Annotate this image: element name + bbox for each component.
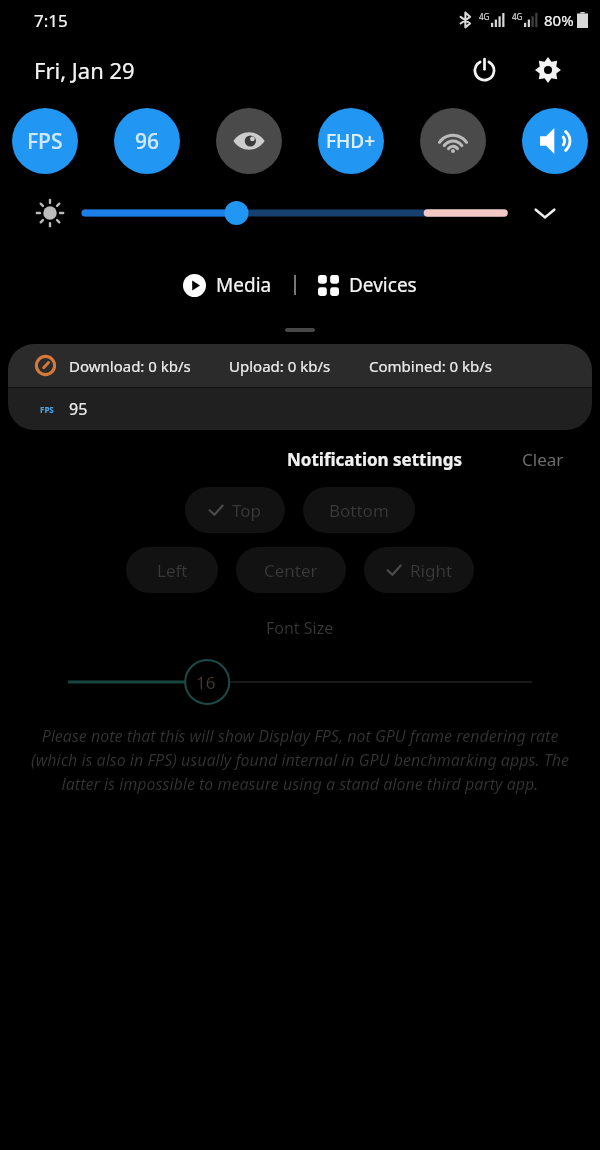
- staticText: Bottom: [329, 499, 389, 522]
- staticText: 16: [196, 671, 216, 694]
- button[interactable]: Right: [364, 547, 474, 593]
- button[interactable]: Brightness: [85, 198, 500, 228]
- staticText: 4G: [512, 11, 523, 22]
- button[interactable]: Resolution FHD+: [318, 108, 384, 174]
- button[interactable]: FPS: [8, 388, 592, 430]
- staticText: FPS: [27, 127, 63, 156]
- staticText: Combined: 0 kb/s: [369, 356, 493, 376]
- staticText: Upload: 0 kb/s: [229, 356, 331, 376]
- button[interactable]: Notification settings: [279, 440, 470, 479]
- button[interactable]: Top: [185, 487, 285, 533]
- staticText: Notification settings: [287, 448, 462, 471]
- staticText: FHD+: [326, 128, 376, 154]
- staticText: Clear: [522, 448, 564, 471]
- button[interactable]: Power off: [462, 48, 506, 92]
- staticText: 80%: [544, 10, 574, 30]
- staticText: 96: [135, 127, 160, 156]
- button[interactable]: Blue light filter: [216, 108, 282, 174]
- staticText: Right: [410, 559, 453, 582]
- staticText: 95: [69, 398, 88, 420]
- button[interactable]: Wi-Fi: [420, 108, 486, 174]
- button[interactable]: Devices: [312, 266, 423, 304]
- staticText: Font Size: [266, 617, 334, 639]
- staticText: Please note that this will show Display …: [22, 725, 578, 795]
- button[interactable]: FPS counter: [12, 108, 78, 174]
- staticText: Media: [216, 272, 272, 298]
- button[interactable]: Clear: [514, 440, 572, 479]
- button[interactable]: Left: [126, 547, 218, 593]
- button[interactable]: Center: [236, 547, 346, 593]
- staticText: Top: [232, 499, 262, 522]
- staticText: Left: [157, 559, 188, 582]
- staticText: 7:15: [34, 9, 68, 32]
- staticText: FPS: [40, 404, 54, 415]
- button[interactable]: Bottom: [303, 487, 415, 533]
- staticText: Download: 0 kb/s: [69, 356, 191, 376]
- button[interactable]: Sound: [522, 108, 588, 174]
- button[interactable]: Expand brightness settings: [526, 194, 564, 232]
- button[interactable]: Settings: [526, 48, 570, 92]
- button[interactable]: Media: [177, 266, 278, 304]
- staticText: 4G: [479, 11, 490, 22]
- button[interactable]: Font size slider: [0, 661, 600, 703]
- button[interactable]: Refresh rate 96: [114, 108, 180, 174]
- staticText: Fri, Jan 29: [34, 55, 135, 85]
- button[interactable]: Download: 0 kb/s: [8, 344, 592, 387]
- staticText: Center: [264, 559, 318, 582]
- staticText: Devices: [349, 272, 417, 298]
